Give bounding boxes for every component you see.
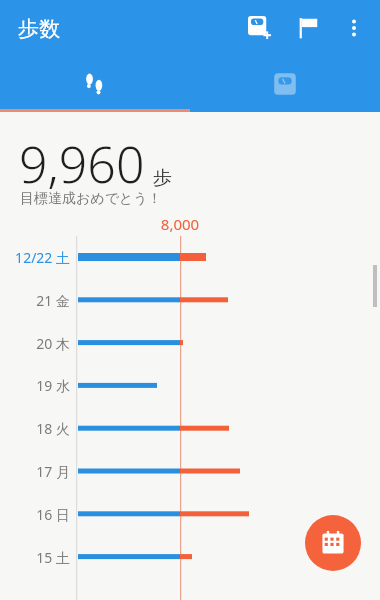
staticText: 21 金 (2, 291, 70, 310)
staticText: 歩 (153, 166, 172, 190)
button[interactable]: Add weight (236, 4, 284, 52)
button[interactable]: Steps tab (0, 56, 190, 112)
staticText: 19 水 (2, 376, 70, 395)
staticText: 12/22 土 (2, 248, 70, 267)
button[interactable]: Calendar (305, 515, 361, 571)
staticText: 16 日 (2, 505, 70, 524)
button[interactable]: More options (332, 6, 376, 50)
staticText: 8,000 (140, 214, 220, 234)
staticText: 15 土 (2, 548, 70, 567)
staticText: 18 火 (2, 419, 70, 438)
button[interactable]: Goal (284, 4, 332, 52)
staticText: 9,960 (19, 130, 145, 198)
staticText: 目標達成おめでとう！ (20, 190, 162, 208)
staticText: 17 月 (2, 462, 70, 481)
staticText: 歩数 (18, 16, 60, 42)
button[interactable]: Weight tab (190, 56, 380, 112)
staticText: 20 木 (2, 334, 70, 353)
